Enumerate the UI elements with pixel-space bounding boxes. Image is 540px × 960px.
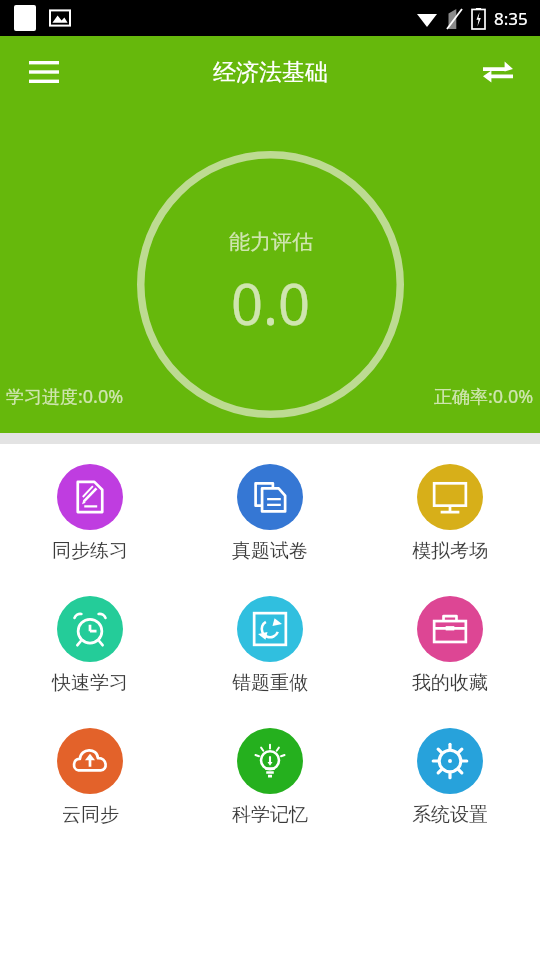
- button[interactable]: 科学记忆: [180, 726, 360, 829]
- staticText: 正确率:0.0%: [434, 384, 534, 409]
- staticText: 模拟考场: [412, 539, 488, 563]
- staticText: 科学记忆: [232, 803, 308, 827]
- staticText: 错题重做: [232, 671, 308, 695]
- button[interactable]: 错题重做: [180, 594, 360, 697]
- staticText: 真题试卷: [232, 539, 308, 563]
- button[interactable]: 快速学习: [0, 594, 180, 697]
- button[interactable]: 云同步: [0, 726, 180, 829]
- staticText: 云同步: [62, 803, 119, 827]
- staticText: 0.0: [231, 265, 311, 341]
- staticText: 系统设置: [412, 803, 488, 827]
- button[interactable]: Switch: [466, 40, 530, 104]
- button[interactable]: 真题试卷: [180, 462, 360, 565]
- button[interactable]: 系统设置: [360, 726, 540, 829]
- button[interactable]: 同步练习: [0, 462, 180, 565]
- button[interactable]: 我的收藏: [360, 594, 540, 697]
- staticText: 8:35: [494, 7, 528, 30]
- staticText: 同步练习: [52, 539, 128, 563]
- staticText: 能力评估: [229, 229, 313, 255]
- staticText: 学习进度:0.0%: [6, 384, 124, 409]
- staticText: 经济法基础: [213, 58, 328, 87]
- button[interactable]: Menu: [10, 38, 78, 106]
- staticText: 我的收藏: [412, 671, 488, 695]
- staticText: 快速学习: [52, 671, 128, 695]
- button[interactable]: 模拟考场: [360, 462, 540, 565]
